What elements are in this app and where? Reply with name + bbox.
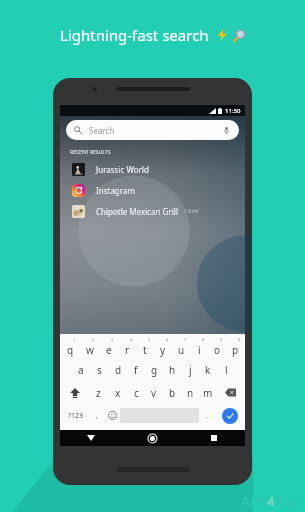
button[interactable]: 3 (99, 337, 118, 359)
button[interactable]: f (127, 359, 145, 381)
button[interactable]: x (108, 381, 127, 404)
staticText: x (115, 386, 121, 400)
other: Search (74, 126, 82, 134)
button[interactable]: 4 (118, 337, 136, 359)
button[interactable]: s (90, 359, 109, 381)
staticText: 4 (267, 492, 275, 510)
staticText: a (78, 363, 84, 377)
staticText: n (187, 386, 194, 400)
button[interactable]: Backspace (217, 381, 244, 404)
staticText: h (169, 363, 176, 377)
staticText: APK (241, 492, 267, 510)
staticText: 6 (166, 337, 169, 342)
button[interactable]: Instagram (60, 180, 245, 201)
button[interactable]: 0 (226, 337, 244, 359)
staticText: m (203, 386, 213, 400)
button[interactable]: n (181, 381, 199, 404)
staticText: i (198, 343, 201, 357)
button[interactable]: a (71, 359, 90, 381)
staticText: Chipotle Mexican Grill (96, 206, 178, 217)
button[interactable]: 6 (154, 337, 172, 359)
staticText: o (214, 343, 221, 357)
button[interactable]: Recents (183, 430, 245, 446)
button[interactable]: , (90, 404, 104, 427)
staticText: j (189, 363, 192, 377)
button[interactable]: k (199, 359, 217, 381)
button[interactable]: c (127, 381, 145, 404)
staticText: b (169, 386, 176, 400)
button[interactable]: Emoji (104, 404, 120, 427)
staticText: r (125, 343, 130, 357)
button[interactable]: 7 (172, 337, 190, 359)
button[interactable]: Search (66, 120, 239, 140)
staticText: d (115, 363, 122, 377)
button[interactable]: z (89, 381, 108, 404)
staticText: 11:50 (225, 107, 241, 115)
staticText: w (86, 343, 94, 357)
button[interactable]: m (199, 381, 217, 404)
staticText: 2 (92, 337, 95, 342)
staticText: z (96, 386, 101, 400)
staticText: . (206, 411, 208, 421)
staticText: p (232, 343, 239, 357)
button[interactable]: 8 (190, 337, 208, 359)
button[interactable]: 1 (61, 337, 80, 359)
button[interactable]: h (163, 359, 181, 381)
button[interactable]: 9 (208, 337, 226, 359)
staticText: RECENT RESULTS (70, 149, 111, 156)
staticText: 1 (73, 337, 76, 342)
button[interactable]: v (145, 381, 163, 404)
staticText: c (134, 386, 139, 400)
button[interactable]: Jurassic World (60, 159, 245, 180)
staticText: e (106, 343, 112, 357)
button[interactable]: 5 (136, 337, 154, 359)
button[interactable]: Shift (61, 381, 89, 404)
staticText: y (160, 343, 166, 357)
other: Voice search (222, 126, 231, 135)
staticText: Search (89, 125, 115, 136)
button[interactable]: Back (60, 430, 121, 446)
staticText: v (151, 386, 157, 400)
staticText: 9 (220, 337, 223, 342)
button[interactable]: d (109, 359, 127, 381)
staticText: 0 (238, 337, 241, 342)
staticText: 4 (130, 337, 133, 342)
staticText: s (97, 363, 102, 377)
staticText: u (178, 343, 185, 357)
staticText: Jurassic World (96, 164, 149, 175)
staticText: 8 (202, 337, 205, 342)
button[interactable]: 2 (80, 337, 99, 359)
staticText: 1.9 mi (184, 208, 199, 215)
staticText: 5 (148, 337, 151, 342)
button[interactable]: Done (222, 408, 238, 424)
staticText: g (151, 363, 158, 377)
staticText: f (134, 363, 138, 377)
staticText: , (96, 411, 98, 421)
staticText: 3 (111, 337, 114, 342)
button[interactable]: g (145, 359, 163, 381)
button[interactable]: b (163, 381, 181, 404)
staticText: Lightning-fast search (60, 25, 209, 45)
staticText: k (205, 363, 211, 377)
button[interactable]: . (199, 404, 215, 427)
staticText: l (225, 363, 228, 377)
button[interactable]: l (217, 359, 235, 381)
staticText: 7 (184, 337, 187, 342)
staticText: ?123 (68, 411, 84, 421)
button[interactable]: Home (121, 430, 183, 446)
staticText: t (143, 343, 147, 357)
button[interactable]: ?123 (61, 404, 90, 427)
staticText: Fun (275, 492, 300, 510)
button[interactable]: j (181, 359, 199, 381)
button[interactable]: Chipotle Mexican Grill (60, 201, 245, 222)
staticText: Instagram (96, 185, 135, 196)
staticText: q (67, 343, 74, 357)
